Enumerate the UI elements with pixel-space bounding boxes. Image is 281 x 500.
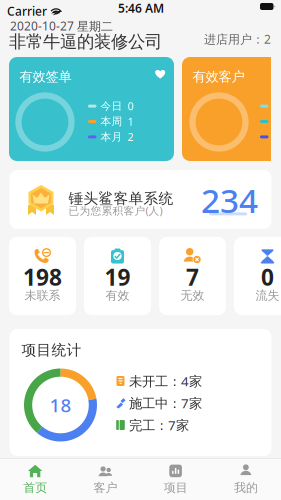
staticText: Carrier [7,3,47,19]
staticText: 进店用户：2 [204,31,271,47]
staticText: 施工中：7家 [129,394,202,412]
staticText: 本周 [100,115,122,128]
staticText: 234 [201,178,258,222]
staticText: 已为您累积客户(人) [68,203,162,218]
staticText: 2020-10-27 星期二 [10,18,113,34]
staticText: 项目 [164,480,188,495]
staticText: 有效 [105,288,129,303]
staticText: 流失 [255,288,279,303]
staticText: 今日 [100,99,122,113]
staticText: 5:46 AM [118,0,164,16]
button[interactable]: 首页 [0,458,70,500]
staticText: 1 [127,114,133,129]
button[interactable]: 我的 [211,458,281,500]
staticText: 0 [261,262,274,292]
button[interactable]: 客户 [70,458,140,500]
staticText: 未开工：4家 [129,372,202,390]
staticText: 有效客户 [192,68,244,85]
staticText: 非常牛逼的装修公司 [9,31,162,52]
staticText: 198 [23,262,62,292]
button[interactable]: 198 [9,237,76,315]
staticText: 18 [49,393,71,417]
staticText: 有效签单 [19,68,71,85]
staticText: 本月 [100,130,122,143]
staticText: 0 [127,99,133,113]
button[interactable]: 有效签单 [9,57,174,161]
button[interactable]: 0 [234,237,281,315]
staticText: 首页 [23,480,47,495]
staticText: 2 [127,130,133,144]
button[interactable]: 有效客户 [182,57,281,161]
staticText: 完工：7家 [129,416,189,434]
staticText: 19 [104,262,130,292]
staticText: 项目统计 [21,341,81,359]
button[interactable]: 7 [159,237,226,315]
button[interactable]: 19 [84,237,151,315]
staticText: 7 [186,262,199,292]
staticText: 锤头鲨客单系统 [68,189,173,207]
staticText: 无效 [180,288,204,303]
button[interactable]: 项目 [140,458,211,500]
staticText: 客户 [93,480,117,495]
button[interactable]: 锤头鲨客单系统 [9,170,271,229]
staticText: 我的 [234,480,258,495]
staticText: 未联系 [24,288,60,303]
